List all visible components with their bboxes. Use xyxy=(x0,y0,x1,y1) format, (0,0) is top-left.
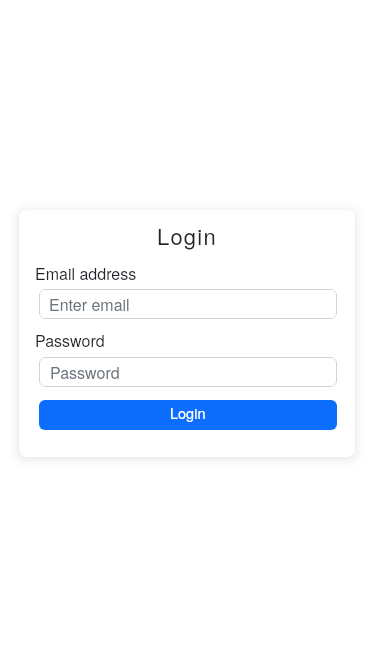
staticText: Password xyxy=(50,361,120,384)
staticText: Password xyxy=(35,329,105,352)
button[interactable]: Password xyxy=(39,357,337,387)
staticText: Login xyxy=(157,220,217,252)
button[interactable]: Login xyxy=(39,400,337,430)
button[interactable]: Enter email xyxy=(39,289,337,319)
staticText: Enter email xyxy=(49,293,130,316)
staticText: Login xyxy=(170,402,206,423)
staticText: Email address xyxy=(35,262,137,285)
